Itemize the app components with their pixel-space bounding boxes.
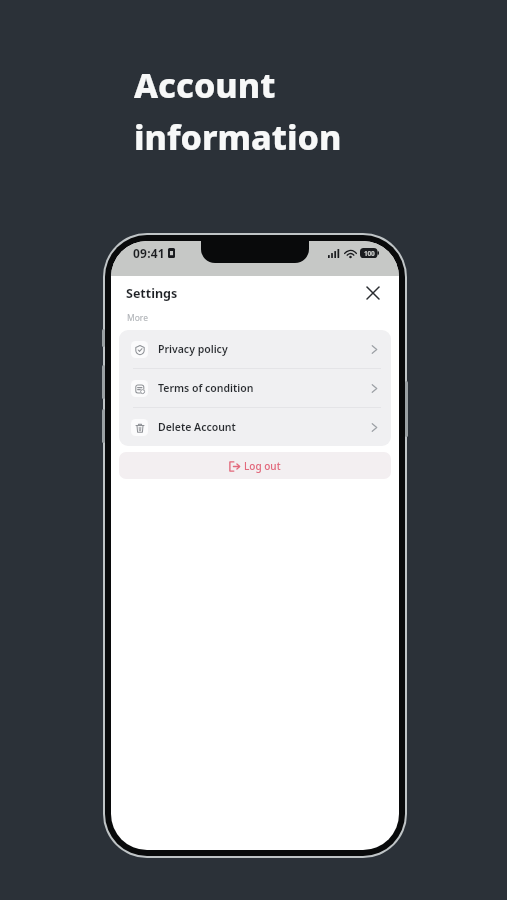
button[interactable]: Close: [362, 282, 384, 304]
button[interactable]: Delete Account: [119, 408, 391, 446]
staticText: Delete Account: [158, 420, 236, 434]
staticText: Log out: [244, 459, 281, 473]
staticText: Terms of condition: [158, 381, 254, 395]
button[interactable]: Terms of condition: [119, 369, 391, 407]
staticText: 09:41: [133, 245, 165, 261]
staticText: 100: [364, 249, 375, 258]
staticText: Account: [134, 62, 276, 108]
staticText: information: [134, 114, 342, 160]
button[interactable]: Log out: [119, 452, 391, 479]
staticText: Privacy policy: [158, 342, 228, 356]
button[interactable]: Privacy policy: [119, 330, 391, 368]
staticText: Settings: [126, 285, 178, 302]
staticText: More: [127, 312, 148, 324]
